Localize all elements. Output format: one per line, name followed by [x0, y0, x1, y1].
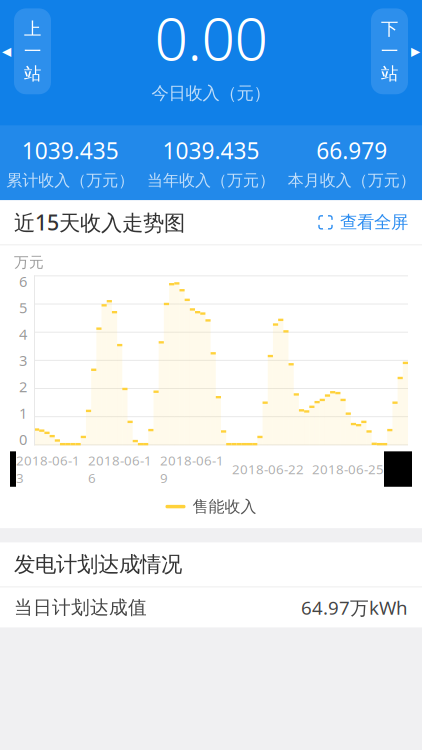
staticText: 3	[19, 351, 27, 370]
staticText: 查看全屏	[340, 212, 408, 233]
staticText: ◀	[2, 44, 11, 58]
staticText: 2018-06-19	[160, 451, 224, 487]
staticText: 5	[19, 298, 27, 317]
staticText: 售能收入	[192, 497, 256, 516]
staticText: 2	[19, 377, 27, 396]
staticText: 64.97万kWh	[301, 595, 408, 620]
button[interactable]: 查看全屏	[318, 212, 408, 233]
staticText: 下	[381, 18, 398, 40]
staticText: 0	[19, 430, 27, 449]
staticText: 站	[381, 63, 398, 84]
staticText: 近15天收入走势图	[14, 208, 185, 236]
button[interactable]: 下一站	[371, 8, 422, 94]
staticText: 66.979	[316, 135, 387, 166]
staticText: 万元	[14, 253, 44, 271]
staticText: 2018-06-16	[88, 451, 152, 487]
staticText: ▶	[411, 44, 420, 58]
staticText: 今日收入（元）	[151, 83, 270, 104]
staticText: 站	[24, 63, 41, 84]
staticText: 一	[24, 41, 41, 62]
staticText: 4	[19, 324, 27, 344]
staticText: 上	[24, 18, 41, 40]
staticText: 2018-06-22	[232, 460, 304, 478]
staticText: 发电计划达成情况	[14, 551, 182, 577]
staticText: 1039.435	[162, 135, 259, 166]
staticText: 2018-06-25	[312, 460, 384, 478]
staticText: 0.00	[154, 0, 267, 77]
button[interactable]: 上一站	[0, 8, 51, 94]
staticText: 累计收入（万元）	[6, 171, 134, 190]
staticText: 1039.435	[22, 135, 119, 166]
staticText: 6	[19, 272, 27, 291]
staticText: 1	[19, 403, 27, 423]
staticText: 当日计划达成值	[14, 596, 147, 619]
staticText: 2018-06-13	[16, 451, 80, 487]
staticText: 当年收入（万元）	[147, 171, 275, 190]
staticText: 一	[381, 41, 398, 62]
staticText: 本月收入（万元）	[288, 171, 416, 190]
